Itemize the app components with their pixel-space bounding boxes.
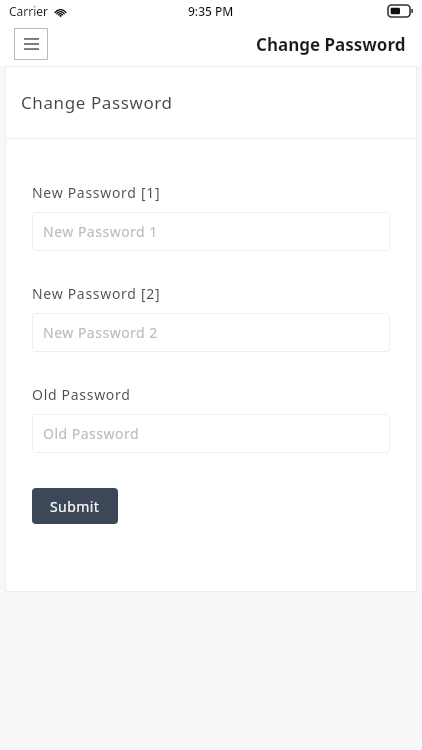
staticText: Change Password	[21, 91, 173, 114]
staticText: Carrier	[9, 3, 49, 19]
staticText: New Password [1]	[32, 183, 161, 202]
staticText: 9:35 PM	[188, 3, 234, 19]
button[interactable]: Menu	[14, 28, 48, 60]
button[interactable]: Submit	[32, 488, 118, 524]
staticText: Old Password	[43, 424, 140, 443]
button[interactable]: New Password 2	[32, 313, 390, 352]
staticText: Submit	[50, 497, 100, 516]
button[interactable]: Old Password	[32, 414, 390, 453]
button[interactable]: New Password 1	[32, 212, 390, 251]
staticText: Change Password	[256, 33, 406, 56]
staticText: New Password 2	[43, 323, 158, 342]
staticText: New Password [2]	[32, 284, 161, 303]
staticText: New Password 1	[43, 222, 158, 241]
staticText: Old Password	[32, 385, 131, 404]
